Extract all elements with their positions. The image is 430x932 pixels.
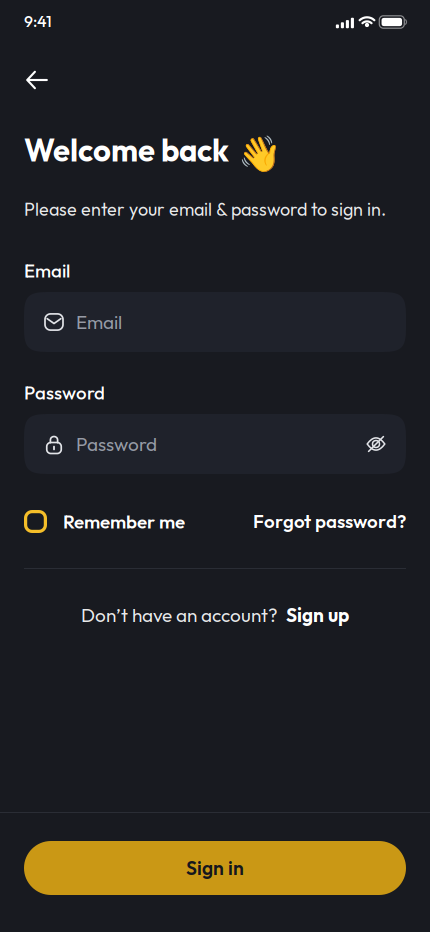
staticText: Remember me — [63, 510, 185, 533]
button[interactable]: Remember me — [24, 510, 185, 533]
staticText: Password — [76, 432, 157, 456]
button[interactable]: Email — [24, 292, 406, 352]
button[interactable]: Back — [14, 58, 58, 102]
staticText: Welcome back — [24, 130, 229, 170]
staticText: Sign in — [186, 856, 244, 880]
staticText: Email — [76, 310, 122, 334]
staticText: Don’t have an account? — [81, 603, 278, 627]
staticText: 👋 — [238, 133, 282, 174]
staticText: Please enter your email & password to si… — [24, 198, 386, 220]
staticText: Email — [24, 259, 70, 282]
button[interactable]: Sign up — [286, 603, 349, 627]
button[interactable]: Show password — [366, 434, 386, 454]
staticText: 9:41 — [24, 11, 52, 31]
staticText: Forgot password? — [253, 509, 406, 533]
button[interactable]: Sign in — [24, 841, 406, 895]
button[interactable]: Password — [24, 414, 406, 474]
staticText: Sign up — [286, 603, 349, 627]
staticText: Password — [24, 381, 105, 404]
button[interactable]: Forgot password? — [253, 509, 406, 533]
